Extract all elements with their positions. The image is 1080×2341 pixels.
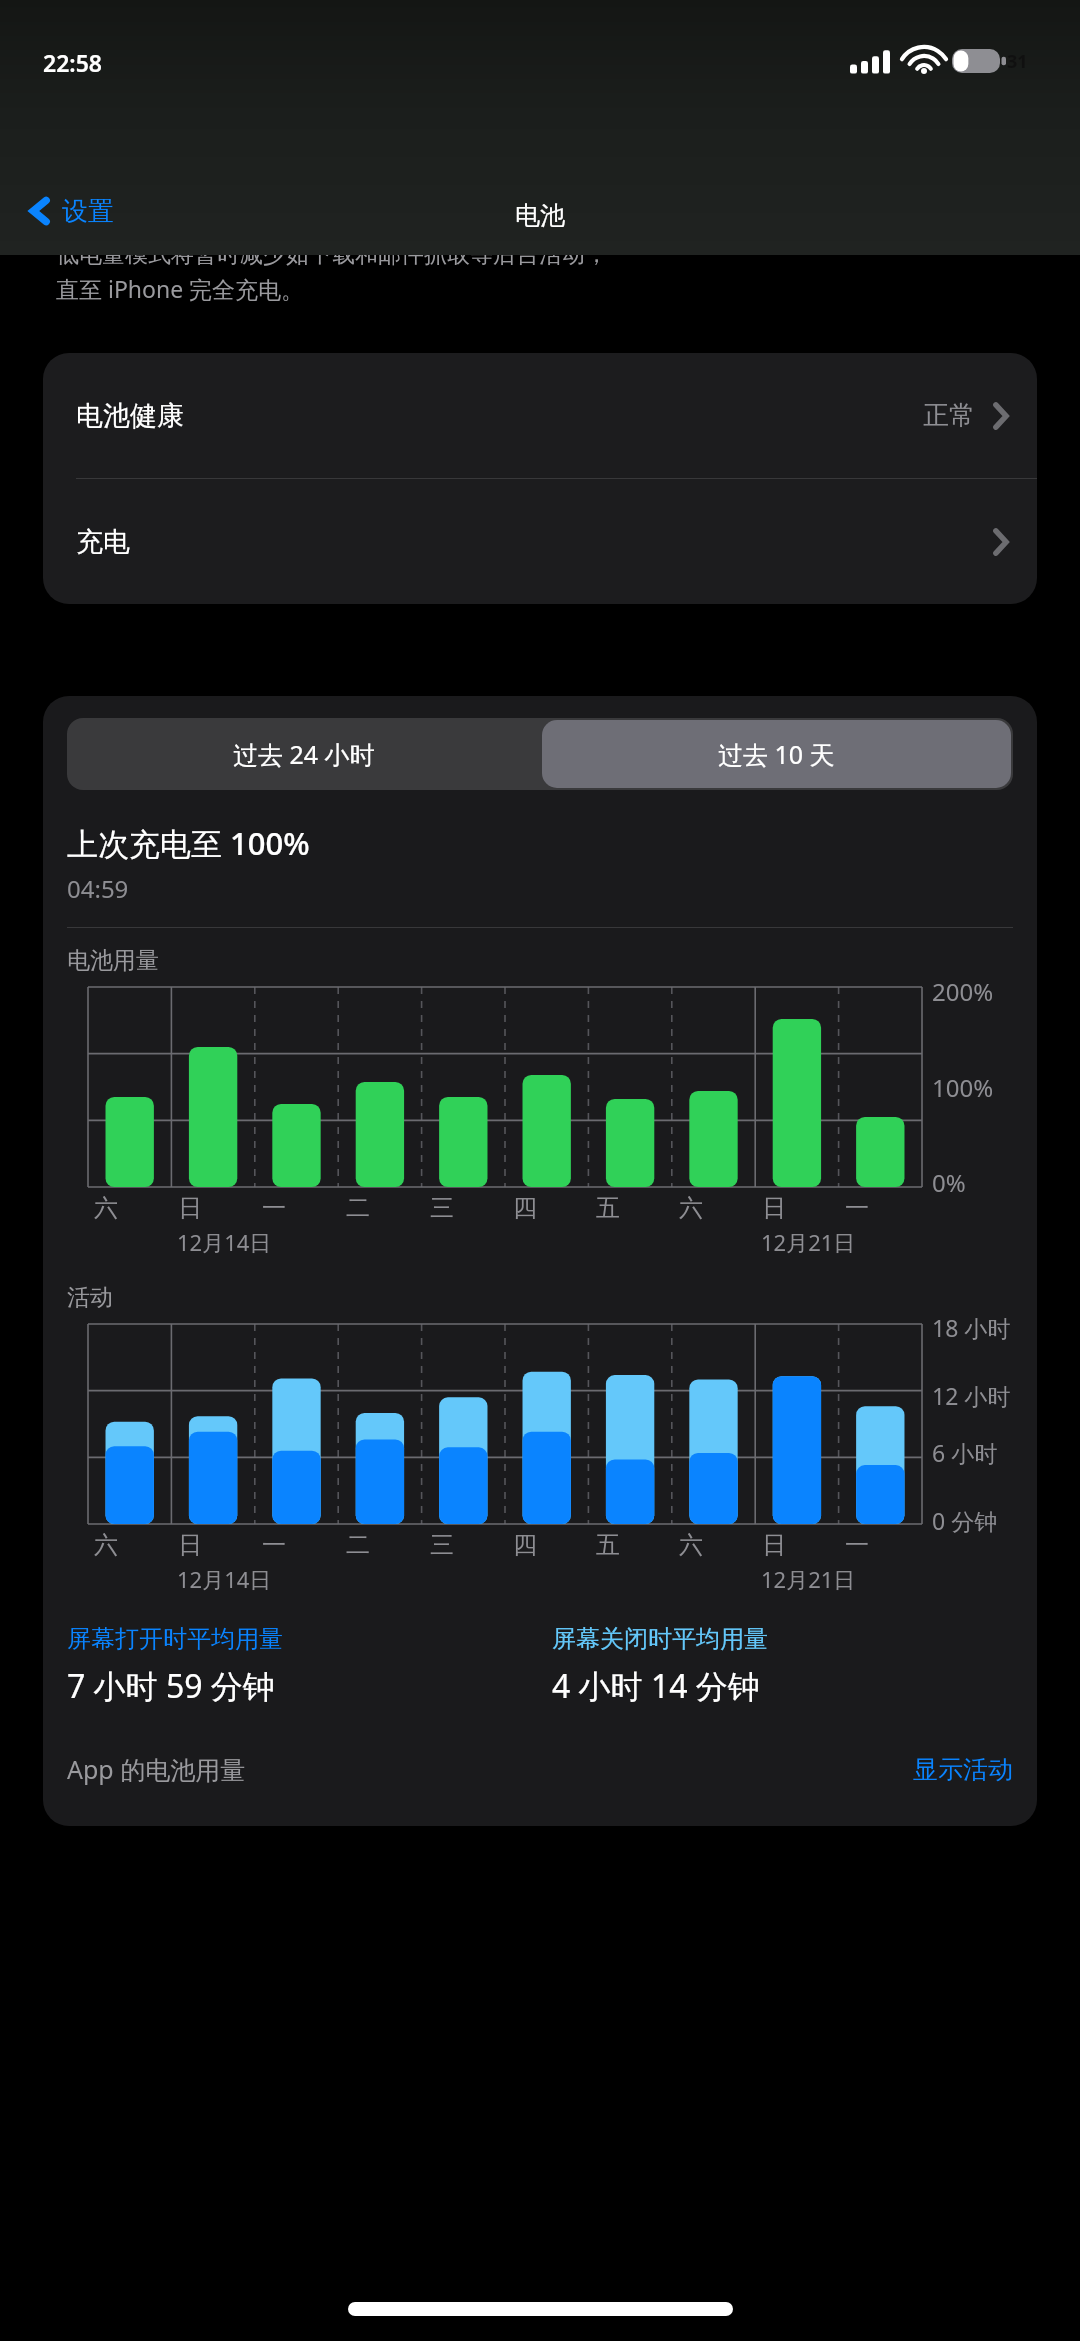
staticText: 日: [178, 1530, 202, 1560]
staticText: 过去 10 天: [718, 737, 835, 771]
staticText: 31: [1007, 49, 1028, 74]
staticText: 日: [762, 1193, 786, 1223]
staticText: 三: [430, 1530, 454, 1560]
staticText: 0 分钟: [932, 1505, 998, 1536]
button[interactable]: 显示活动: [913, 1754, 1013, 1785]
staticText: 二: [346, 1530, 370, 1560]
staticText: 活动: [67, 1283, 113, 1312]
staticText: 7 小时 59 分钟: [67, 1664, 275, 1708]
staticText: 日: [178, 1193, 202, 1223]
staticText: 电池: [515, 200, 565, 231]
staticText: 二: [346, 1193, 370, 1223]
staticText: 充电: [76, 525, 130, 559]
staticText: 六: [679, 1193, 703, 1223]
staticText: 屏幕关闭时平均用量: [552, 1624, 768, 1654]
staticText: 上次充电至 100%: [67, 822, 310, 864]
staticText: 0%: [932, 1166, 966, 1199]
staticText: 五: [596, 1193, 620, 1223]
staticText: 六: [94, 1193, 118, 1223]
staticText: 4 小时 14 分钟: [552, 1664, 760, 1708]
staticText: 12月14日: [177, 1227, 272, 1257]
button[interactable]: 过去 24 小时: [67, 718, 540, 790]
staticText: 日: [762, 1530, 786, 1560]
staticText: 四: [513, 1530, 537, 1560]
staticText: 12 小时: [932, 1380, 1011, 1411]
staticText: 12月21日: [761, 1227, 856, 1257]
staticText: 200%: [932, 975, 994, 1008]
staticText: 一: [262, 1193, 286, 1223]
staticText: 四: [513, 1193, 537, 1223]
staticText: 电池用量: [67, 946, 159, 975]
staticText: 屏幕打开时平均用量: [67, 1624, 283, 1654]
staticText: 12月14日: [177, 1564, 272, 1594]
staticText: 三: [430, 1193, 454, 1223]
staticText: 04:59: [67, 872, 129, 905]
staticText: 设置: [62, 195, 114, 228]
staticText: 一: [845, 1193, 869, 1223]
staticText: 100%: [932, 1071, 994, 1104]
staticText: 低电量模式将暂时减少如下载和邮件抓取等后台活动， 直至 iPhone 完全充电。: [56, 240, 608, 305]
staticText: 18 小时: [932, 1312, 1011, 1343]
staticText: 显示活动: [913, 1754, 1013, 1785]
button[interactable]: 充电: [43, 479, 1037, 604]
other: 返回: [26, 189, 54, 233]
staticText: 6 小时: [932, 1437, 998, 1468]
staticText: 12月21日: [761, 1564, 856, 1594]
button[interactable]: 低电量模式: [43, 118, 1037, 218]
button[interactable]: 屏幕打开时平均用量: [67, 1624, 552, 1708]
staticText: App 的电池用量: [67, 1752, 246, 1786]
button[interactable]: 屏幕关闭时平均用量: [552, 1624, 1037, 1708]
staticText: 六: [679, 1530, 703, 1560]
staticText: 五: [596, 1530, 620, 1560]
staticText: 一: [262, 1530, 286, 1560]
button[interactable]: 过去 10 天: [542, 720, 1011, 788]
staticText: 22:58: [43, 47, 102, 78]
staticText: 正常: [923, 399, 975, 432]
button[interactable]: 电池健康: [43, 353, 1037, 478]
button[interactable]: 返回: [26, 189, 114, 233]
staticText: 一: [845, 1530, 869, 1560]
staticText: 电池健康: [76, 399, 184, 433]
staticText: 过去 24 小时: [233, 737, 375, 771]
staticText: 六: [94, 1530, 118, 1560]
